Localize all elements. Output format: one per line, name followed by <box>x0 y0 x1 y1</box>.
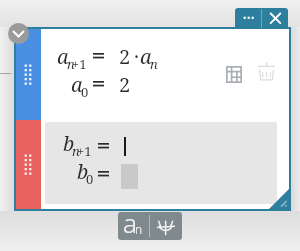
staticText: n <box>72 142 80 160</box>
staticText: a <box>57 43 69 70</box>
staticText: b <box>77 158 89 185</box>
staticText: a <box>71 71 83 98</box>
button[interactable]: Close <box>262 8 288 29</box>
staticText: n <box>150 55 158 73</box>
staticText: 0 <box>81 83 89 101</box>
button[interactable]: Show table <box>220 60 248 88</box>
staticText: · <box>134 43 139 70</box>
staticText: n <box>135 221 143 237</box>
button[interactable]: Hide keyboard <box>150 212 182 240</box>
staticText: 0 <box>86 170 94 188</box>
staticText: a <box>123 212 137 233</box>
button[interactable]: More options <box>235 8 262 29</box>
staticText: +1 <box>77 142 92 160</box>
staticText: n <box>67 55 75 73</box>
button[interactable] <box>45 122 277 204</box>
button[interactable]: Sequence variable a sub n <box>118 212 149 240</box>
staticText: a <box>140 43 152 70</box>
button[interactable]: Reorder sequence a <box>15 29 41 120</box>
button[interactable]: Collapse <box>8 23 29 44</box>
staticText: +1 <box>72 55 87 73</box>
button[interactable]: Delete <box>252 56 280 84</box>
staticText: b <box>63 130 75 157</box>
staticText: 2 <box>119 43 131 70</box>
staticText: 2 <box>119 71 131 98</box>
button[interactable]: Reorder sequence b <box>15 120 41 209</box>
